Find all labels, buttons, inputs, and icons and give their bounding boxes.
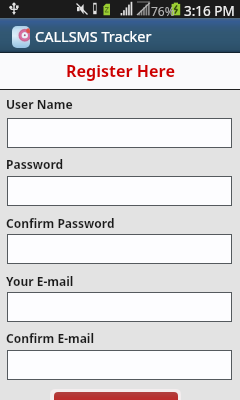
button[interactable] xyxy=(7,234,232,264)
staticText: Confirm Password xyxy=(6,215,115,231)
button[interactable] xyxy=(7,176,232,206)
button[interactable] xyxy=(7,118,232,148)
button[interactable] xyxy=(7,292,232,322)
staticText: 3:16 PM xyxy=(184,2,235,20)
staticText: Password xyxy=(6,156,64,172)
staticText: Confirm E-mail xyxy=(6,330,95,346)
staticText: Your E-mail xyxy=(6,273,74,289)
button[interactable]: Register xyxy=(50,389,181,400)
button[interactable] xyxy=(7,350,232,380)
staticText: 76% xyxy=(151,3,175,19)
staticText: Register Here xyxy=(66,60,175,82)
staticText: User Name xyxy=(6,96,73,112)
staticText: CALLSMS Tracker xyxy=(35,26,152,46)
